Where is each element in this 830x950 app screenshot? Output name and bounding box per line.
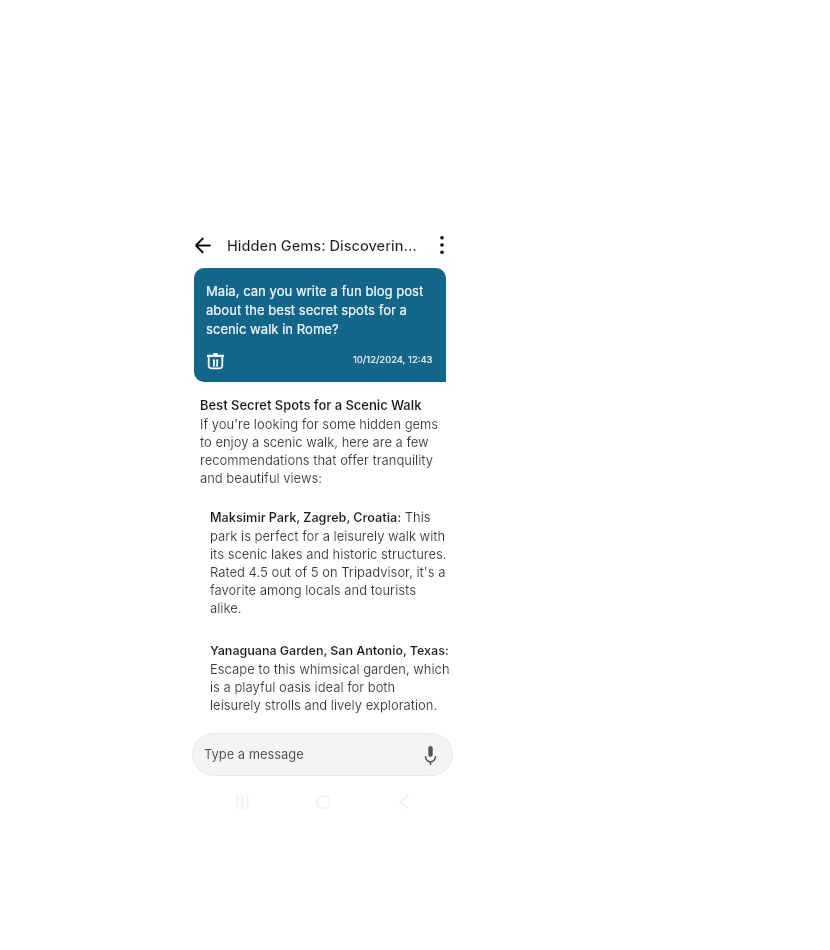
staticText: Hidden Gems: Discoverin… bbox=[227, 237, 417, 255]
staticText: 10/12/2024, 12:43 bbox=[353, 354, 433, 365]
button[interactable]: Maia, can you write a fun blog post abou… bbox=[194, 268, 446, 382]
button[interactable]: Home bbox=[309, 789, 337, 815]
button[interactable]: Type a message bbox=[192, 733, 453, 776]
button[interactable]: More options bbox=[428, 231, 455, 258]
button[interactable]: Back bbox=[189, 231, 217, 259]
button[interactable]: Voice input bbox=[418, 743, 442, 767]
button[interactable]: Delete message bbox=[200, 346, 230, 376]
staticText: Maksimir Park, Zagreb, Croatia: This par… bbox=[210, 510, 449, 616]
staticText: Type a message bbox=[204, 747, 304, 763]
staticText: Best Secret Spots for a Scenic Walk If y… bbox=[200, 398, 439, 486]
staticText: Maia, can you write a fun blog post abou… bbox=[206, 283, 437, 338]
staticText: Yanaguana Garden, San Antonio, Texas: Es… bbox=[210, 643, 470, 713]
button[interactable]: Recent apps bbox=[228, 789, 256, 815]
